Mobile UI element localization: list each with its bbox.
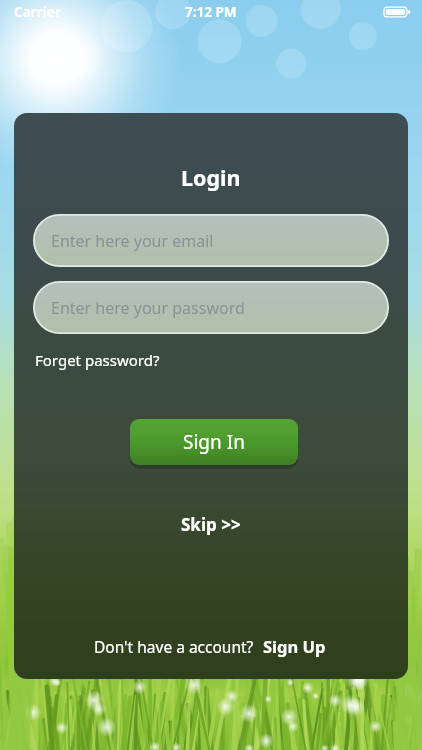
button[interactable]: Sign In: [130, 419, 298, 465]
staticText: Sign In: [183, 429, 245, 455]
button[interactable]: Skip >>: [173, 509, 249, 540]
staticText: Sign Up: [263, 635, 326, 657]
staticText: Don't have a account?: [94, 636, 254, 657]
staticText: Login: [181, 163, 241, 192]
staticText: Enter here your password: [51, 297, 245, 319]
button[interactable]: Enter here your email: [33, 214, 389, 267]
staticText: Forget password?: [35, 350, 160, 370]
button[interactable]: Enter here your password: [33, 281, 389, 334]
button[interactable]: Sign Up: [261, 632, 328, 660]
staticText: 7:12 PM: [185, 3, 237, 21]
staticText: Carrier: [14, 3, 61, 21]
staticText: Skip >>: [181, 513, 241, 536]
staticText: Enter here your email: [51, 230, 214, 252]
button[interactable]: Forget password?: [33, 346, 162, 374]
